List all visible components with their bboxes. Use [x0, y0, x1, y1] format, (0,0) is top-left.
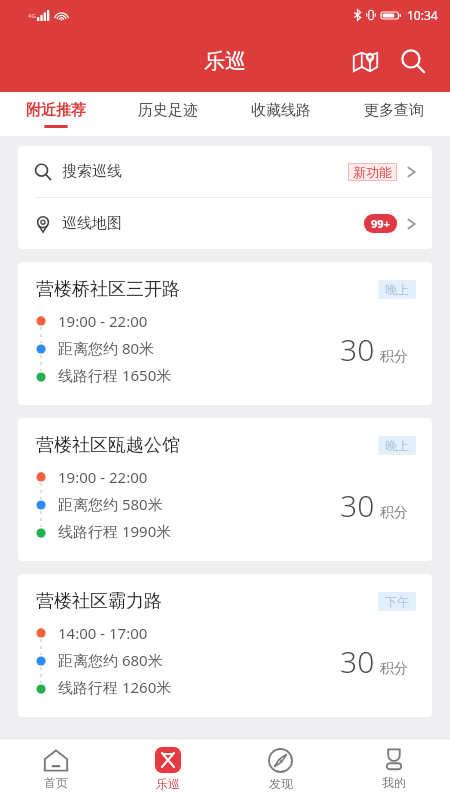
staticText: 乐巡	[204, 48, 246, 74]
staticText: 营楼桥社区三开路	[36, 278, 180, 301]
staticText: 线路行程 1650米	[58, 365, 172, 385]
button[interactable]: Search	[392, 40, 434, 82]
staticText: 搜索巡线	[62, 162, 122, 181]
button[interactable]: 巡线地图	[18, 198, 432, 249]
staticText: 19:00 - 22:00	[58, 467, 148, 487]
staticText: 积分	[380, 660, 408, 678]
staticText: 30	[340, 329, 375, 370]
button[interactable]: 附近推荐	[0, 92, 112, 136]
staticText: 线路行程 1260米	[58, 677, 172, 697]
staticText: 积分	[380, 504, 408, 522]
staticText: 附近推荐	[26, 101, 86, 120]
staticText: 距离您约 680米	[58, 650, 163, 670]
staticText: 晚上	[385, 438, 409, 453]
button[interactable]: 乐巡	[112, 738, 224, 800]
staticText: 新功能	[353, 164, 392, 180]
staticText: 距离您约 580米	[58, 494, 163, 514]
staticText: 30	[340, 641, 375, 682]
staticText: 14:00 - 17:00	[58, 623, 148, 643]
button[interactable]: Map	[344, 40, 386, 82]
staticText: 历史足迹	[138, 101, 198, 120]
staticText: 乐巡	[156, 776, 180, 791]
staticText: 线路行程 1990米	[58, 521, 172, 541]
staticText: 更多查询	[364, 101, 424, 120]
button[interactable]: 搜索巡线	[18, 146, 432, 197]
staticText: 10:34	[407, 7, 438, 23]
staticText: 19:00 - 22:00	[58, 311, 148, 331]
staticText: 发现	[269, 776, 293, 791]
button[interactable]: 营楼桥社区三开路	[18, 262, 432, 405]
staticText: 4G	[28, 12, 36, 20]
button[interactable]: 首页	[0, 738, 112, 800]
button[interactable]: 发现	[224, 738, 337, 800]
staticText: 首页	[44, 775, 68, 790]
staticText: 营楼社区霸力路	[36, 590, 162, 613]
staticText: 营楼社区瓯越公馆	[36, 434, 180, 457]
button[interactable]: 收藏线路	[224, 92, 337, 136]
button[interactable]: 营楼社区霸力路	[18, 574, 432, 717]
staticText: 收藏线路	[251, 101, 311, 120]
staticText: 30	[340, 485, 375, 526]
button[interactable]: 更多查询	[337, 92, 450, 136]
staticText: 积分	[380, 348, 408, 366]
staticText: 巡线地图	[62, 214, 122, 233]
staticText: 距离您约 80米	[58, 338, 155, 358]
button[interactable]: 我的	[337, 738, 450, 800]
button[interactable]: 历史足迹	[112, 92, 224, 136]
staticText: 晚上	[385, 282, 409, 297]
staticText: 下午	[385, 594, 409, 609]
button[interactable]: 营楼社区瓯越公馆	[18, 418, 432, 561]
staticText: 我的	[382, 775, 406, 790]
staticText: 99+	[371, 216, 390, 231]
